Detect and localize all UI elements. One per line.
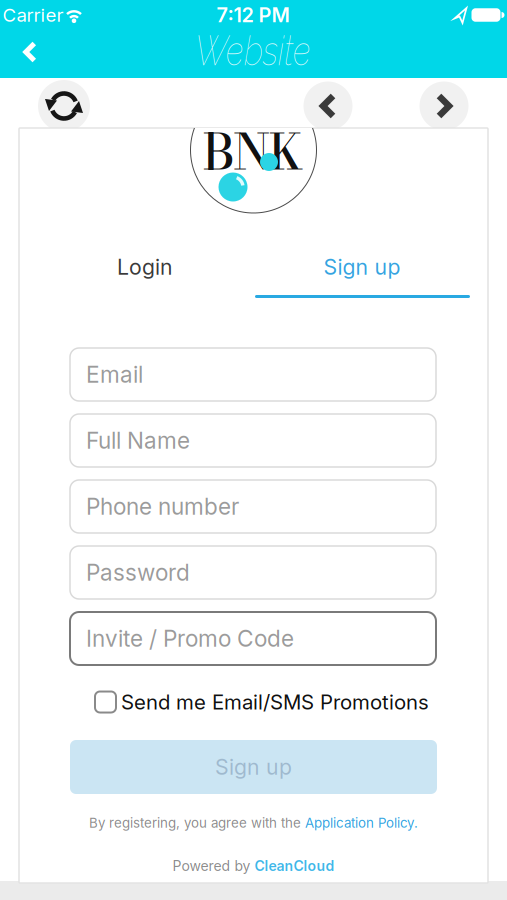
staticText: Application Policy.	[305, 815, 418, 831]
button[interactable]: Email	[70, 348, 436, 401]
button[interactable]: Application Policy.	[305, 815, 418, 831]
button[interactable]: Login	[37, 245, 253, 289]
button[interactable]: Phone number	[70, 480, 436, 533]
button[interactable]: CleanCloud	[254, 857, 334, 874]
staticText: Phone number	[86, 493, 239, 520]
staticText: Website	[195, 31, 311, 70]
button[interactable]: Back	[0, 30, 60, 74]
button[interactable]: Invite / Promo Code	[70, 612, 436, 665]
button[interactable]: Sign up	[254, 245, 470, 289]
button[interactable]: Password	[70, 546, 436, 599]
button[interactable]: Sign up	[70, 740, 437, 794]
button[interactable]: Full Name	[70, 414, 436, 467]
staticText: CleanCloud	[254, 857, 334, 874]
staticText: Email	[86, 361, 143, 388]
button[interactable]: Reload	[38, 80, 90, 132]
staticText: Invite / Promo Code	[86, 625, 294, 652]
staticText: Carrier	[2, 4, 63, 26]
staticText: Send me Email/SMS Promotions	[121, 690, 429, 714]
button[interactable]: Go forward	[419, 81, 468, 130]
staticText: Powered by	[172, 857, 250, 874]
button[interactable]: Go back	[303, 81, 352, 130]
staticText: Full Name	[86, 427, 190, 454]
staticText: 7:12 PM	[216, 3, 289, 27]
staticText: By registering, you agree with the	[89, 815, 301, 831]
staticText: Password	[86, 559, 190, 586]
staticText: Sign up	[215, 754, 292, 780]
staticText: Login	[117, 254, 173, 280]
staticText: BNK	[202, 115, 303, 189]
staticText: Sign up	[323, 254, 400, 280]
button[interactable]: Send me Email/SMS Promotions	[95, 690, 429, 714]
